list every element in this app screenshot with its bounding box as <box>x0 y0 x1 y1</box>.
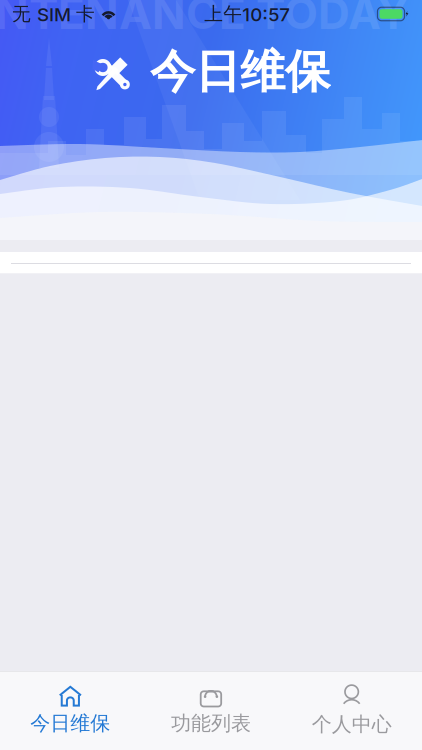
button[interactable]: 个人中心 <box>281 671 422 750</box>
button[interactable]: 功能列表 <box>141 671 281 750</box>
staticText: 个人中心 <box>312 712 392 737</box>
staticText: 无 SIM 卡 <box>12 2 95 26</box>
staticText: MAINTENANCE TODAY <box>0 0 409 40</box>
staticText: 今日维保 <box>30 711 110 736</box>
button[interactable]: 今日维保 <box>0 671 141 750</box>
staticText: 今日维保 <box>150 43 330 100</box>
staticText: 上午10:57 <box>204 2 290 26</box>
staticText: 功能列表 <box>171 711 251 736</box>
